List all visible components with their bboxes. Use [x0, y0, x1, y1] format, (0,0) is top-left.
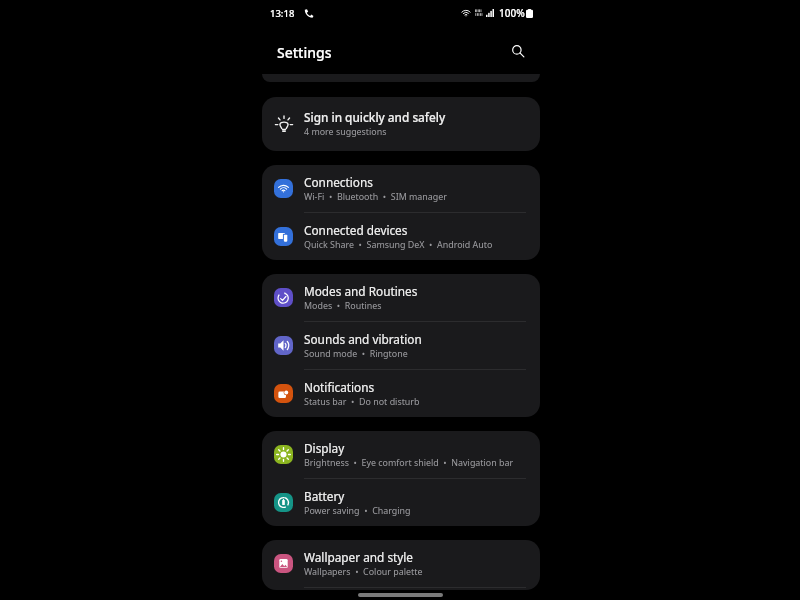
staticText: Connected devices	[304, 222, 408, 238]
staticText: Brightness • Eye comfort shield • Naviga…	[304, 456, 514, 468]
button[interactable]: Notifications	[262, 370, 540, 417]
staticText: Settings	[277, 43, 332, 62]
button[interactable]: Battery	[262, 479, 540, 526]
staticText: Status bar • Do not disturb	[304, 395, 420, 407]
staticText: Power saving • Charging	[304, 504, 411, 516]
staticText: Sounds and vibration	[304, 331, 422, 347]
button[interactable]: Display	[262, 431, 540, 478]
staticText: Wallpaper and style	[304, 549, 414, 565]
button[interactable]: Search	[503, 36, 533, 66]
staticText: 4 more suggestions	[304, 125, 387, 137]
button[interactable]: Sounds and vibration	[262, 322, 540, 369]
button[interactable]: Wallpaper and style	[262, 540, 540, 587]
button[interactable]: Modes and Routines	[262, 274, 540, 321]
staticText: Sound mode • Ringtone	[304, 347, 408, 359]
button[interactable]: Sign in quickly and safely	[262, 97, 540, 151]
staticText: 13:18	[270, 7, 295, 20]
staticText: Wallpapers • Colour palette	[304, 565, 423, 577]
staticText: 100%	[499, 6, 525, 20]
button[interactable]: Connected devices	[262, 213, 540, 260]
staticText: Modes and Routines	[304, 283, 418, 299]
staticText: Notifications	[304, 379, 375, 395]
staticText: Display	[304, 440, 345, 456]
staticText: Modes • Routines	[304, 299, 382, 311]
staticText: Quick Share • Samsung DeX • Android Auto	[304, 238, 493, 250]
staticText: Sign in quickly and safely	[304, 109, 446, 125]
staticText: Wi-Fi • Bluetooth • SIM manager	[304, 190, 447, 202]
staticText: Connections	[304, 174, 373, 190]
staticText: Battery	[304, 488, 345, 504]
button[interactable]: Connections	[262, 165, 540, 212]
